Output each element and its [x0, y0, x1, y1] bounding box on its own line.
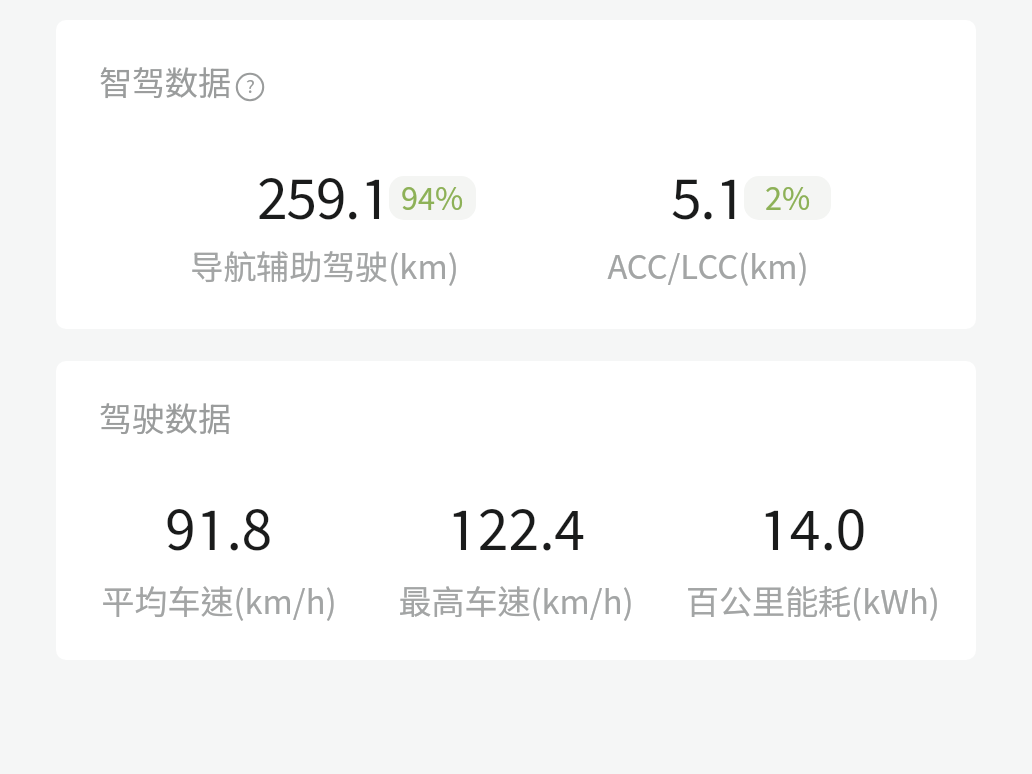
button[interactable]: 说明: [235, 72, 265, 102]
staticText: ?: [246, 75, 255, 97]
staticText: 导航辅助驾驶(km): [190, 247, 459, 286]
staticText: 91.8: [165, 495, 273, 561]
staticText: 259.1: [257, 164, 390, 230]
staticText: 智驾数据: [99, 63, 231, 102]
staticText: 2%: [765, 180, 811, 217]
staticText: 百公里能耗(kWh): [686, 582, 940, 621]
button[interactable]: 驾驶数据: [56, 361, 976, 660]
staticText: 最高车速(km/h): [398, 582, 634, 621]
staticText: 122.4: [447, 495, 585, 561]
staticText: 14.0: [759, 495, 867, 561]
staticText: ACC/LCC(km): [607, 247, 809, 286]
staticText: 94%: [401, 180, 464, 217]
button[interactable]: 智驾数据: [56, 20, 976, 329]
staticText: 驾驶数据: [99, 399, 231, 438]
staticText: 5.1: [671, 164, 745, 230]
staticText: 平均车速(km/h): [101, 582, 337, 621]
